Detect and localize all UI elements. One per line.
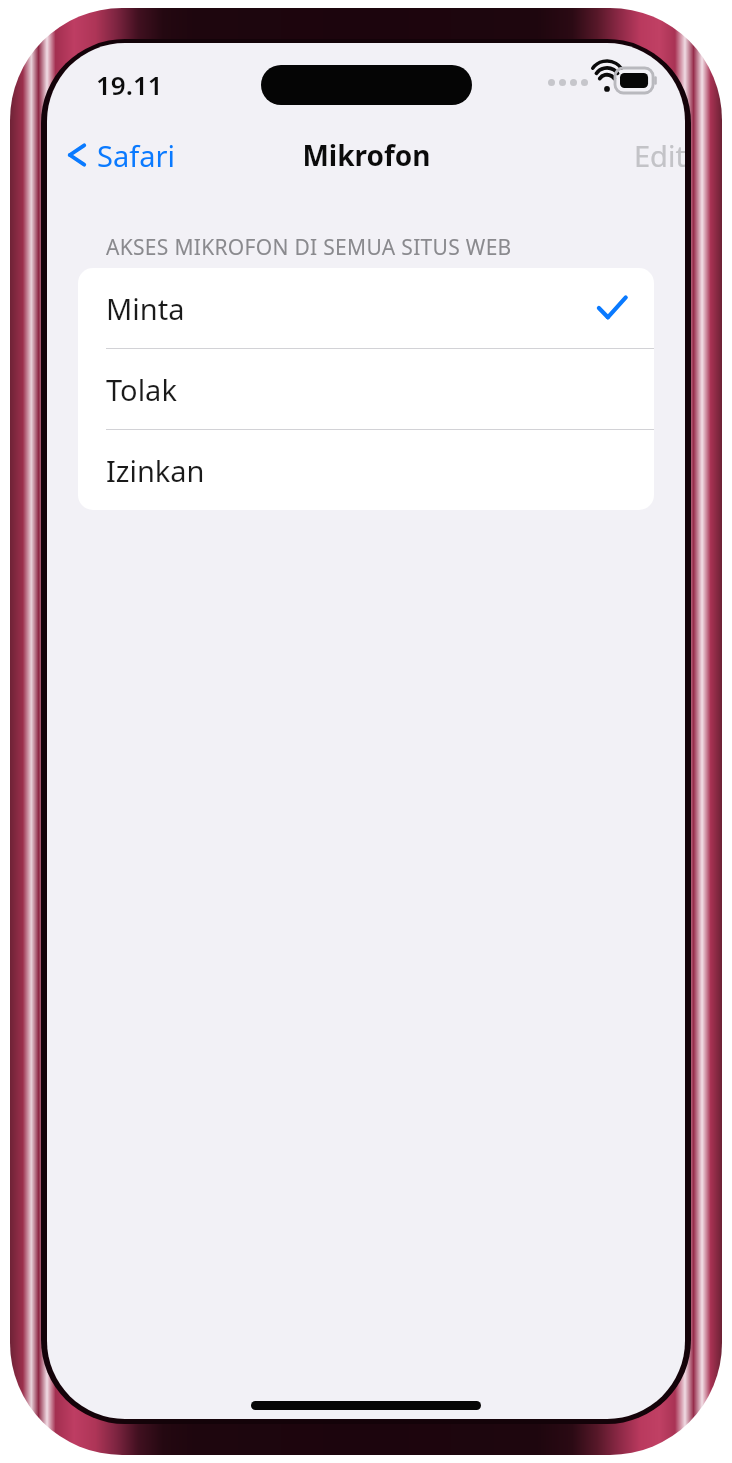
staticText: Izinkan	[106, 451, 205, 490]
staticText: 19.11	[96, 67, 163, 102]
staticText: AKSES MIKROFON DI SEMUA SITUS WEB	[106, 233, 512, 262]
button[interactable]: Safari	[59, 125, 187, 185]
staticText: Mikrofon	[302, 136, 431, 174]
staticText: Tolak	[106, 370, 177, 409]
staticText: Minta	[106, 289, 185, 328]
staticText: Safari	[97, 136, 175, 175]
button[interactable]: Izinkan	[78, 430, 654, 510]
button[interactable]: Minta	[78, 268, 654, 348]
staticText: Edit	[634, 136, 685, 175]
button[interactable]: Edit	[622, 125, 685, 185]
button[interactable]: Tolak	[78, 349, 654, 429]
